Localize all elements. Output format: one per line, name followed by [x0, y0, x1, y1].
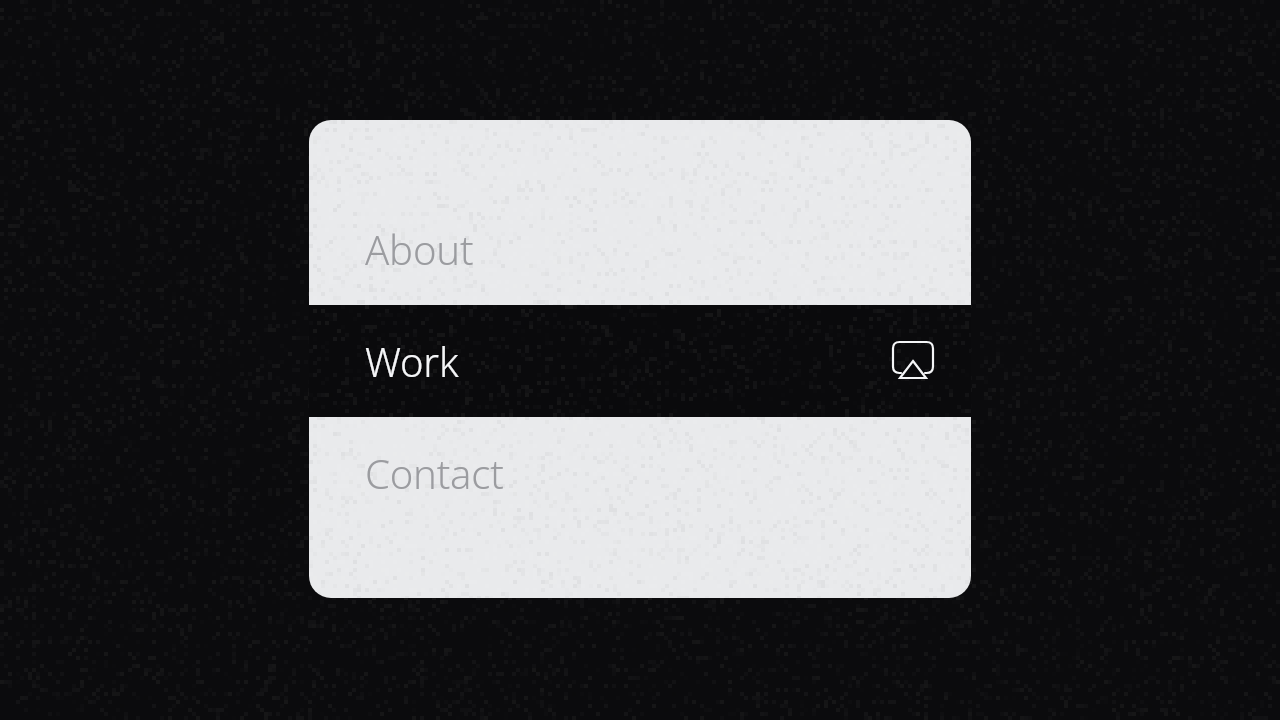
button[interactable]: Contact	[309, 417, 971, 529]
staticText: About	[365, 222, 474, 276]
staticText: Work	[365, 334, 459, 388]
button[interactable]: Screen mirroring	[891, 339, 937, 383]
staticText: Contact	[365, 446, 504, 500]
button[interactable]: Work	[309, 305, 971, 417]
button[interactable]: About	[309, 193, 971, 305]
